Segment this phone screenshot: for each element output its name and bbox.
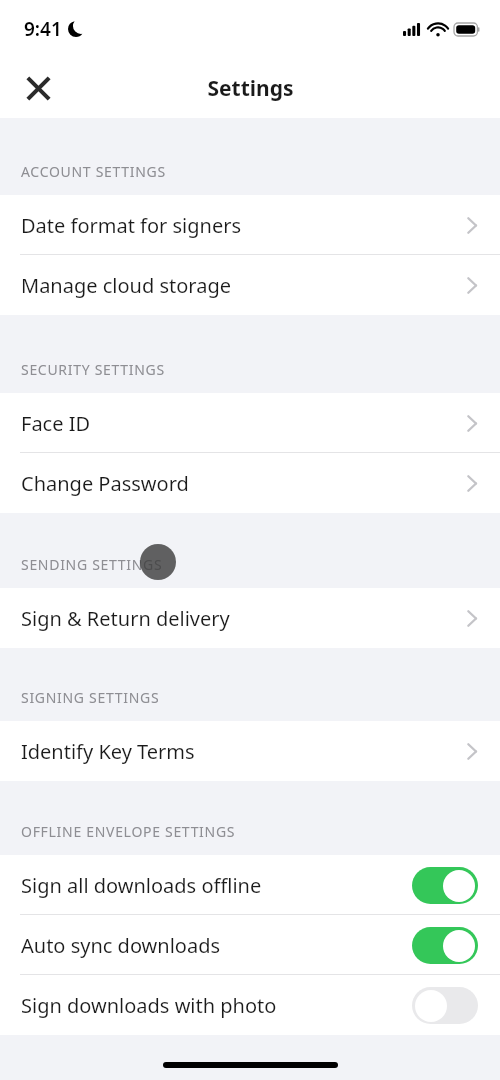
staticText: Face ID xyxy=(21,410,91,437)
button[interactable]: Auto sync downloads xyxy=(0,915,500,975)
staticText: OFFLINE ENVELOPE SETTINGS xyxy=(21,822,236,841)
button[interactable]: Sign & Return delivery xyxy=(0,588,500,648)
button[interactable]: Change Password xyxy=(0,453,500,513)
button[interactable]: Face ID xyxy=(0,393,500,453)
staticText: Date format for signers xyxy=(21,212,242,239)
staticText: Sign downloads with photo xyxy=(21,992,277,1019)
button[interactable]: Sign all downloads offline xyxy=(0,855,500,915)
button[interactable]: Date format for signers xyxy=(0,195,500,255)
staticText: SENDING SETTINGS xyxy=(21,555,163,574)
button[interactable]: Manage cloud storage xyxy=(0,255,500,315)
staticText: Manage cloud storage xyxy=(21,272,231,299)
button[interactable] xyxy=(412,867,478,904)
staticText: Change Password xyxy=(21,470,189,497)
staticText: SIGNING SETTINGS xyxy=(21,688,160,707)
staticText: Identify Key Terms xyxy=(21,738,195,765)
button[interactable] xyxy=(412,987,478,1024)
staticText: ACCOUNT SETTINGS xyxy=(21,162,166,181)
staticText: Settings xyxy=(207,74,294,103)
staticText: 9:41 xyxy=(24,16,62,42)
staticText: Sign all downloads offline xyxy=(21,872,262,899)
staticText: SECURITY SETTINGS xyxy=(21,360,165,379)
staticText: Sign & Return delivery xyxy=(21,605,230,632)
button[interactable]: Identify Key Terms xyxy=(0,721,500,781)
button[interactable] xyxy=(412,927,478,964)
staticText: Auto sync downloads xyxy=(21,932,221,959)
button[interactable]: Sign downloads with photo xyxy=(0,975,500,1035)
button[interactable]: Close xyxy=(16,66,60,110)
